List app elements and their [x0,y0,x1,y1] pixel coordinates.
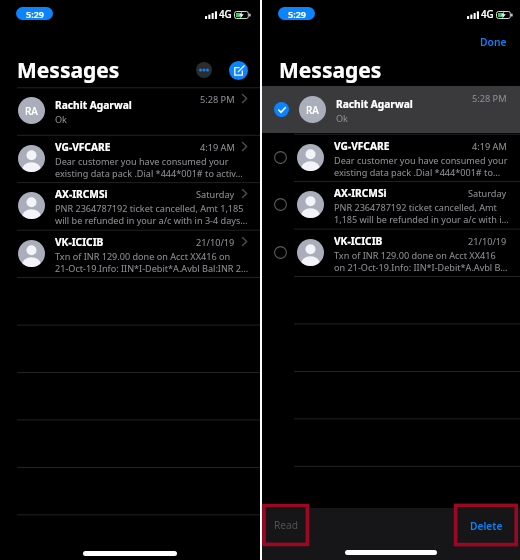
staticText: Rachit Agarwal [336,97,413,111]
staticText: Dear customer you have consumed your [55,155,229,167]
staticText: Dear customer you have consumed your [334,154,508,166]
staticText: on 21-Oct-19.Info: IIN*I-Debit*A.Avbl B… [334,261,508,273]
button[interactable]: VG-VFCARE [262,134,520,181]
staticText: 21/10/19 [196,236,235,249]
button[interactable]: VK-ICICIB [0,230,260,277]
staticText: VG-VFCARE [334,139,390,153]
staticText: Done [480,35,507,49]
button[interactable]: Delete [454,504,518,547]
staticText: 21-Oct-19.Info: IIN*I-Debit*A.Avbl Bal:I… [55,262,249,274]
button[interactable]: RA [262,86,520,133]
button[interactable]: AX-IRCMSi [0,182,260,229]
staticText: 5:29 [288,8,306,20]
staticText: Messages [17,56,120,85]
button[interactable]: VK-ICICIB [262,229,520,276]
staticText: AX-IRCMSi [334,186,387,200]
button[interactable]: RA [0,87,260,134]
staticText: 1,185 will be refunded in your a/c with … [334,213,509,225]
button[interactable]: AX-IRCMSi [262,181,520,228]
staticText: VG-VFCARE [55,140,111,154]
staticText: VK-ICICIB [334,234,383,248]
staticText: existing data pack .Dial *444*001# to… [334,166,501,178]
staticText: PNR 2364787192 ticket cancelled, Amt 1,1… [55,202,244,214]
staticText: Ok [336,112,348,124]
staticText: 5:28 PM [472,92,507,105]
button[interactable]: New message [229,61,248,80]
staticText: Txn of INR 129.00 done on Acct XX416 [334,249,496,261]
button[interactable]: More options [196,62,212,78]
staticText: AX-IRCMSi [55,187,108,201]
staticText: RA [25,104,38,118]
staticText: 5:28 PM [200,93,235,106]
staticText: VK-ICICIB [55,235,104,249]
staticText: PNR 2364787192 ticket cancelled, Amt [334,201,497,213]
staticText: 21/10/19 [468,235,507,248]
staticText: 5:29 [26,8,44,20]
staticText: RA [306,103,319,117]
staticText: will be refunded in your a/c with in 3-4… [55,214,248,226]
staticText: Txn of INR 129.00 done on Acct XX416 on [55,250,231,262]
button[interactable]: VG-VFCARE [0,135,260,182]
button[interactable]: Read [263,504,310,546]
staticText: Read [274,518,299,532]
staticText: 4G [481,8,494,21]
staticText: existing data pack .Dial *444*001# to ac… [55,167,243,179]
staticText: 4:19 AM [200,141,235,154]
staticText: Saturday [196,188,235,201]
staticText: Delete [470,519,503,533]
staticText: Messages [279,56,382,85]
button[interactable]: Done [476,32,511,52]
staticText: 4G [219,8,232,21]
staticText: Ok [55,113,67,125]
staticText: Saturday [468,187,507,200]
staticText: 4:19 AM [472,140,507,153]
staticText: Rachit Agarwal [55,98,132,112]
